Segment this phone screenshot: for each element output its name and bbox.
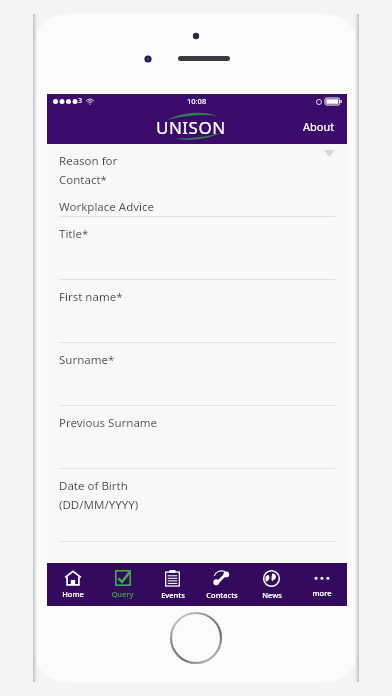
- staticText: Events: [161, 590, 185, 600]
- staticText: Date of Birth: [59, 478, 128, 494]
- staticText: more: [312, 588, 332, 598]
- staticText: News: [262, 590, 282, 600]
- button[interactable]: Home: [48, 563, 97, 606]
- staticText: Surname*: [59, 352, 115, 368]
- staticText: Contacts: [206, 590, 238, 600]
- staticText: Workplace Advice: [59, 199, 155, 215]
- staticText: Query: [111, 589, 134, 599]
- staticText: Contact*: [59, 172, 107, 188]
- staticText: UNISON: [156, 116, 226, 139]
- staticText: Reason for: [59, 153, 118, 169]
- button[interactable]: more: [297, 563, 346, 606]
- button[interactable]: UNISON: [148, 111, 234, 141]
- button[interactable]: Contacts: [197, 563, 246, 606]
- staticText: 3: [78, 96, 83, 106]
- staticText: (DD/MM/YYYY): [59, 497, 139, 513]
- staticText: First name*: [59, 289, 123, 305]
- staticText: Home: [62, 589, 84, 599]
- button[interactable]: News: [247, 563, 296, 606]
- button[interactable]: Title*: [59, 217, 335, 280]
- button[interactable]: Previous Surname: [59, 406, 335, 469]
- staticText: Title*: [59, 226, 89, 242]
- button[interactable]: Date of Birth: [59, 469, 335, 542]
- button[interactable]: First name*: [59, 280, 335, 343]
- staticText: About: [303, 119, 335, 134]
- staticText: 10:08: [187, 96, 207, 106]
- button[interactable]: Query: [98, 563, 147, 606]
- button[interactable]: About: [291, 108, 347, 144]
- button[interactable]: Surname*: [59, 343, 335, 406]
- button[interactable]: Events: [148, 563, 197, 606]
- button[interactable]: Home button: [170, 612, 222, 664]
- button[interactable]: Reason for: [59, 144, 335, 217]
- staticText: Previous Surname: [59, 415, 158, 431]
